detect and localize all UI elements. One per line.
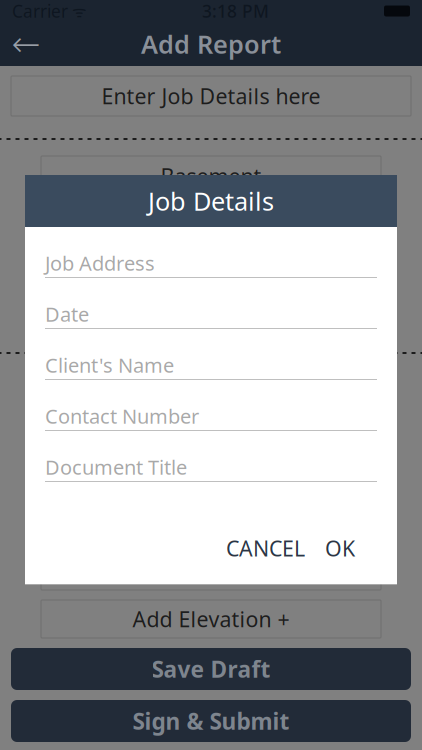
button[interactable]: Back	[0, 22, 52, 66]
staticText: ᯤ	[68, 0, 87, 22]
staticText: Add Room +	[149, 557, 272, 585]
button[interactable]: Add Room +	[41, 552, 381, 590]
staticText: Add Report	[141, 27, 281, 61]
staticText: CANCEL	[226, 534, 305, 562]
staticText: OK	[325, 534, 355, 562]
staticText: Client's Name	[45, 352, 174, 378]
staticText: Date	[45, 301, 89, 327]
staticText: Basement	[160, 162, 261, 190]
button[interactable]: Save Draft	[11, 648, 411, 690]
staticText: ←	[11, 24, 40, 64]
staticText: Add Elevation +	[132, 605, 289, 633]
button[interactable]: OK	[315, 526, 365, 570]
button[interactable]: CANCEL	[216, 526, 315, 570]
staticText: Carrier	[12, 0, 68, 22]
staticText: 3:18 PM	[202, 0, 269, 22]
staticText: Job Address	[45, 250, 155, 276]
button[interactable]: Add Elevation +	[41, 600, 381, 638]
button[interactable]: Sign & Submit	[11, 700, 411, 742]
staticText: Contact Number	[45, 403, 199, 429]
staticText: Document Title	[45, 454, 187, 480]
button[interactable]: Enter Job Details here	[11, 76, 411, 116]
staticText: Enter Job Details here	[101, 82, 320, 110]
staticText: Sign & Submit	[132, 706, 289, 736]
staticText: Job Details	[148, 184, 274, 218]
staticText: Save Draft	[151, 654, 270, 684]
